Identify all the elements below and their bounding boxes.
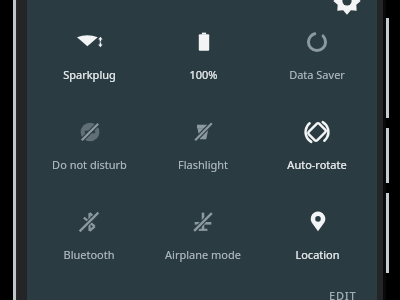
staticText: Airplane mode xyxy=(165,247,241,262)
staticText: EDIT xyxy=(329,288,357,300)
staticText: Auto-rotate xyxy=(287,157,347,172)
staticText: Sparkplug xyxy=(63,67,116,82)
staticText: Bluetooth xyxy=(63,247,115,262)
staticText: Flashlight xyxy=(178,157,228,172)
staticText: 100% xyxy=(189,67,218,82)
button[interactable]: Sparkplug xyxy=(34,29,144,109)
button[interactable]: Settings xyxy=(333,0,361,15)
button[interactable]: EDIT xyxy=(319,288,367,300)
button[interactable]: 100% xyxy=(148,29,258,109)
button[interactable]: Bluetooth xyxy=(34,209,144,289)
staticText: Data Saver xyxy=(289,67,345,82)
button[interactable]: Auto-rotate xyxy=(262,119,372,199)
button[interactable]: Airplane mode xyxy=(148,209,258,289)
button[interactable]: Data Saver xyxy=(262,29,372,109)
button[interactable]: Flashlight xyxy=(148,119,258,199)
button[interactable]: Do not disturb xyxy=(34,119,144,199)
button[interactable]: Location xyxy=(262,209,372,289)
staticText: Do not disturb xyxy=(52,157,127,172)
staticText: Location xyxy=(295,247,340,262)
